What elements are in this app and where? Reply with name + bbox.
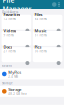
staticText: 48.2 GB free bbox=[8, 92, 27, 96]
staticText: Music bbox=[35, 28, 47, 33]
staticText: 84 items bbox=[35, 17, 47, 21]
button[interactable]: Docs bbox=[2, 47, 31, 62]
staticText: 2.4 MB bbox=[8, 75, 18, 78]
staticText: Files bbox=[35, 12, 43, 17]
button[interactable]: Storage bbox=[0, 86, 64, 97]
button[interactable]: More bbox=[56, 0, 61, 8]
staticText: Storage bbox=[2, 81, 13, 85]
button[interactable]: Files bbox=[33, 15, 62, 30]
staticText: 9 items bbox=[3, 33, 13, 37]
button[interactable]: Music bbox=[33, 31, 62, 46]
button[interactable]: Pics bbox=[33, 47, 62, 62]
button[interactable]: Videos bbox=[2, 31, 31, 46]
staticText: Quick Access bbox=[2, 10, 18, 14]
staticText: 27 items bbox=[3, 49, 15, 53]
button[interactable]: Account bbox=[52, 2, 56, 7]
staticText: 31 items bbox=[35, 33, 47, 37]
staticText: MyPics bbox=[8, 70, 21, 75]
staticText: Favorites bbox=[3, 12, 20, 17]
staticText: Docs bbox=[3, 44, 12, 49]
staticText: Videos bbox=[3, 28, 16, 33]
button[interactable]: Favorites bbox=[2, 15, 31, 30]
staticText: Recent bbox=[2, 64, 12, 68]
staticText: Storage bbox=[8, 87, 21, 92]
button[interactable]: MyPics bbox=[0, 68, 64, 79]
staticText: Pics bbox=[35, 44, 42, 49]
staticText: File Manager bbox=[2, 0, 31, 13]
staticText: 12 items bbox=[3, 17, 15, 21]
staticText: 56 items bbox=[35, 49, 47, 53]
